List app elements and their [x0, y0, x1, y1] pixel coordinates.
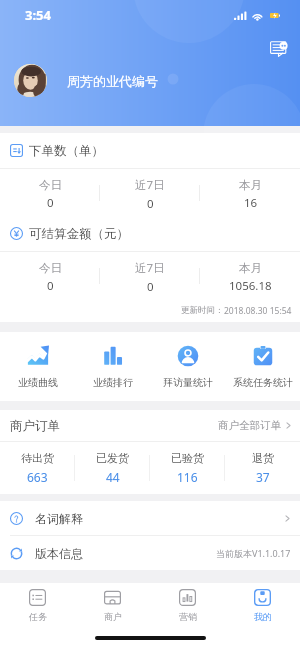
staticText: 可结算金额（元）	[29, 226, 129, 242]
staticText: 任务	[29, 611, 47, 622]
staticText: 业绩排行	[93, 376, 133, 389]
staticText: 0	[147, 279, 154, 295]
button[interactable]: 退货	[225, 442, 300, 494]
staticText: 0	[147, 196, 154, 212]
staticText: 已验货	[171, 451, 204, 465]
staticText: 待出货	[21, 451, 54, 465]
staticText: 本月	[239, 178, 262, 192]
button[interactable]: Messages	[270, 41, 291, 60]
staticText: 系统任务统计	[233, 376, 293, 389]
button[interactable]: 名词解释	[0, 501, 300, 535]
button[interactable]: 拜访量统计	[150, 332, 225, 401]
button[interactable]: 营销	[150, 583, 225, 628]
button[interactable]: 业绩曲线	[0, 332, 75, 401]
staticText: 周芳的业代编号	[67, 73, 158, 89]
staticText: 0	[47, 278, 54, 294]
staticText: 名词解释	[35, 511, 83, 526]
staticText: 我的	[254, 611, 272, 622]
button[interactable]: 商户	[75, 583, 150, 628]
button[interactable]: 版本信息	[0, 536, 300, 570]
staticText: 37	[256, 469, 270, 485]
staticText: 今日	[39, 261, 62, 275]
staticText: 拜访量统计	[163, 376, 213, 389]
staticText: 下单数（单）	[29, 143, 104, 159]
button[interactable]: 待出货	[0, 442, 75, 494]
staticText: 今日	[39, 178, 62, 192]
button[interactable]: 已验货	[150, 442, 225, 494]
staticText: 商户订单	[10, 418, 60, 434]
button[interactable]: 我的	[225, 583, 300, 628]
staticText: 0	[47, 195, 54, 211]
staticText: 本月	[239, 261, 262, 275]
staticText: 16	[244, 195, 258, 211]
staticText: 业绩曲线	[18, 376, 58, 389]
button[interactable]: 业绩排行	[75, 332, 150, 401]
staticText: 版本信息	[35, 546, 83, 561]
staticText: 商户	[104, 611, 122, 622]
staticText: 116	[177, 469, 198, 485]
staticText: 当前版本V1.1.0.17	[216, 547, 291, 559]
staticText: 退货	[252, 451, 274, 465]
staticText: 3:54	[25, 6, 51, 24]
staticText: 近7日	[135, 177, 165, 193]
staticText: 商户全部订单	[218, 419, 281, 432]
button[interactable]: 商户订单	[0, 410, 300, 441]
button[interactable]: 系统任务统计	[225, 332, 300, 401]
staticText: 1056.18	[229, 278, 272, 294]
staticText: 2018.08.30 15:54	[224, 305, 292, 317]
staticText: 近7日	[135, 260, 165, 276]
button[interactable]	[14, 64, 47, 97]
button[interactable]: 已发货	[75, 442, 150, 494]
staticText: 663	[27, 469, 48, 485]
staticText: 44	[106, 469, 120, 485]
staticText: 已发货	[96, 451, 129, 465]
staticText: 营销	[179, 611, 197, 622]
button[interactable]: 任务	[0, 583, 75, 628]
staticText: 更新时间：	[181, 305, 224, 316]
